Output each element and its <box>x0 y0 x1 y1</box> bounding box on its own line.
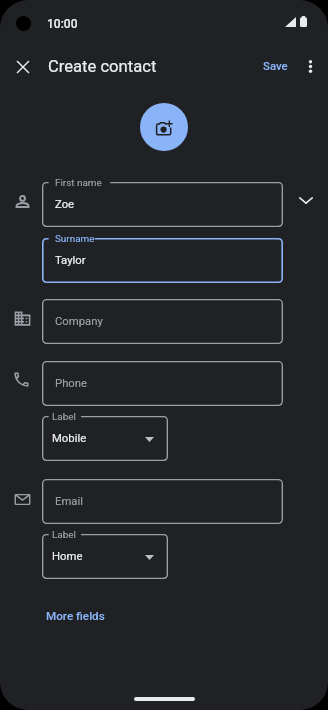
button[interactable]: Company <box>42 299 283 344</box>
button[interactable]: Email <box>42 479 283 524</box>
staticText: Surname <box>55 233 95 245</box>
button[interactable]: Zoe <box>42 182 283 227</box>
button[interactable]: Home <box>42 534 168 579</box>
staticText: Save <box>263 59 288 72</box>
staticText: More fields <box>46 609 105 623</box>
staticText: Label <box>52 529 76 541</box>
staticText: Home <box>52 550 83 563</box>
staticText: First name <box>55 177 102 189</box>
button[interactable]: Save <box>254 52 296 80</box>
button[interactable]: Expand name fields <box>290 185 321 216</box>
staticText: Taylor <box>55 254 86 267</box>
button[interactable]: Add photo <box>140 103 188 151</box>
button[interactable]: More fields <box>38 602 113 630</box>
staticText: Phone <box>55 377 88 390</box>
staticText: Label <box>52 411 76 423</box>
button[interactable]: Phone <box>42 361 283 406</box>
button[interactable]: Close <box>6 50 39 83</box>
staticText: 10:00 <box>47 17 78 31</box>
button[interactable]: Mobile <box>42 416 168 461</box>
staticText: Email <box>55 495 83 508</box>
button[interactable]: More options <box>295 50 326 81</box>
staticText: Mobile <box>52 432 87 445</box>
staticText: Create contact <box>48 57 157 76</box>
staticText: Zoe <box>55 198 75 211</box>
button[interactable]: Taylor <box>42 238 283 283</box>
staticText: Company <box>55 315 103 328</box>
